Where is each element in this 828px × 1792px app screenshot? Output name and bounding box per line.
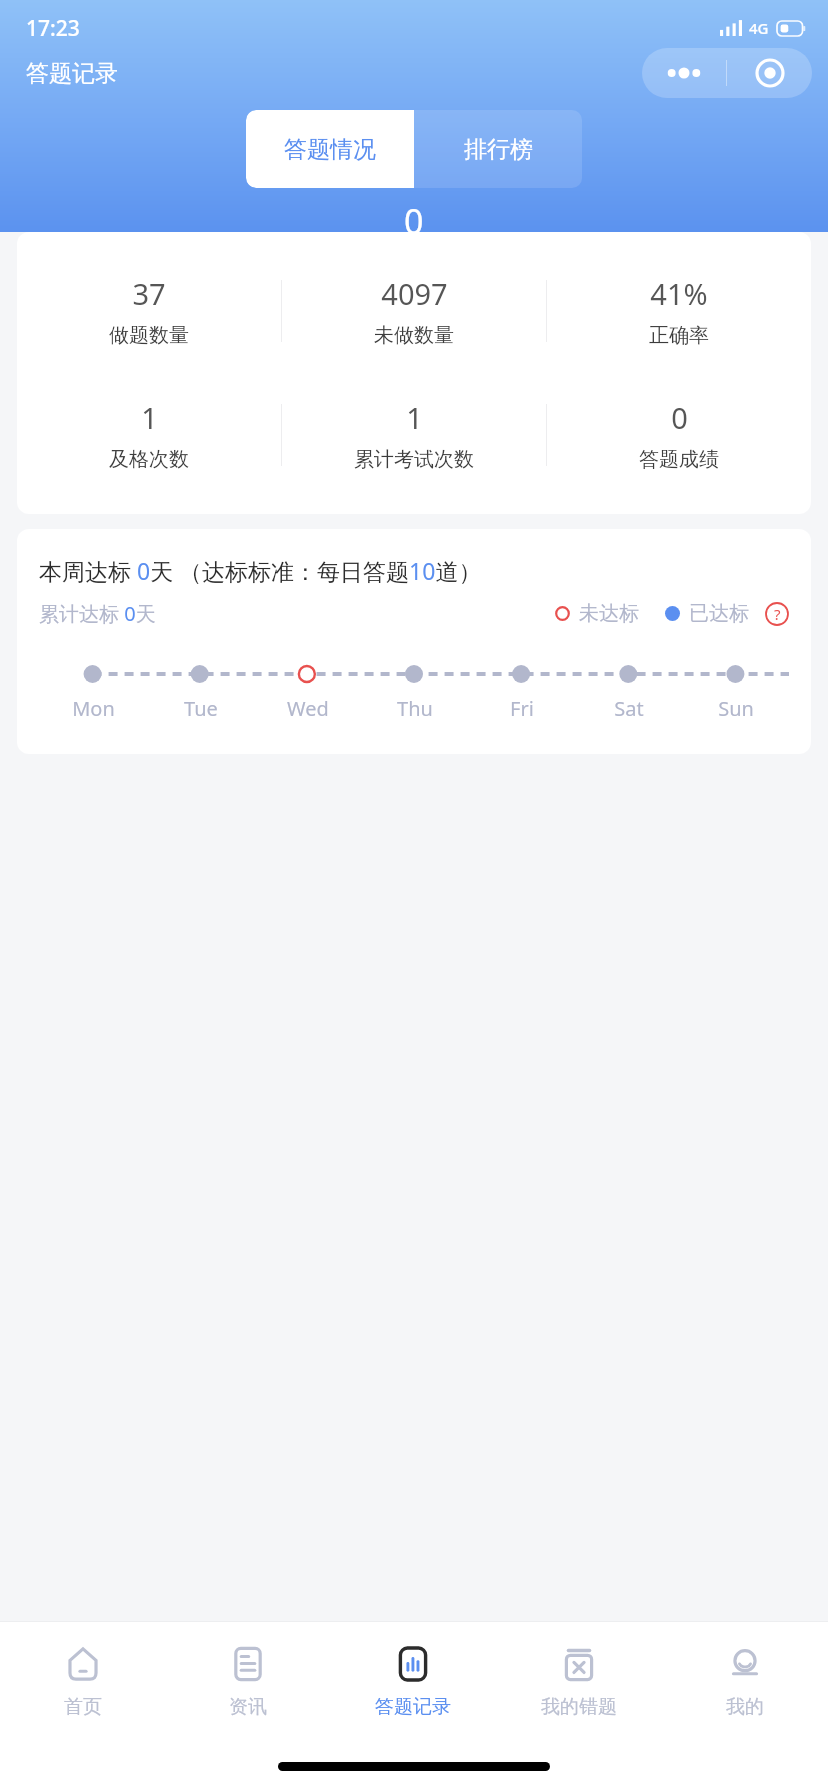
staticText: Wed bbox=[287, 695, 329, 722]
staticText: Fri bbox=[510, 695, 534, 722]
staticText: 累计达标 0天 bbox=[39, 600, 156, 627]
staticText: 1 bbox=[141, 398, 158, 437]
staticText: 及格次数 bbox=[109, 447, 189, 472]
button[interactable]: Help bbox=[765, 602, 789, 626]
staticText: 答题记录 bbox=[375, 1695, 451, 1719]
staticText: 答题情况 bbox=[284, 135, 376, 164]
button[interactable]: 0 bbox=[547, 386, 811, 484]
staticText: 正确率 bbox=[649, 323, 709, 348]
button[interactable]: 1 bbox=[17, 386, 281, 484]
button[interactable]: 37 bbox=[17, 262, 281, 360]
staticText: 1 bbox=[406, 398, 423, 437]
staticText: 37 bbox=[132, 274, 166, 313]
button[interactable]: 我的 bbox=[662, 1622, 828, 1740]
staticText: 未达标 bbox=[579, 601, 639, 626]
staticText: 4097 bbox=[381, 274, 448, 313]
staticText: 我的错题 bbox=[541, 1695, 617, 1719]
staticText: Sat bbox=[614, 695, 644, 722]
button[interactable]: 1 bbox=[282, 386, 546, 484]
button[interactable]: 排行榜 bbox=[414, 110, 582, 188]
button[interactable]: 首页 bbox=[0, 1622, 165, 1740]
staticText: 本周达标 0天 （达标标准：每日答题10道） bbox=[39, 555, 482, 586]
staticText: 已达标 bbox=[689, 601, 749, 626]
button[interactable]: More bbox=[642, 48, 726, 98]
button[interactable]: 37 bbox=[17, 232, 811, 514]
staticText: 41% bbox=[650, 274, 708, 313]
staticText: 我的 bbox=[726, 1695, 764, 1719]
staticText: 累计考试次数 bbox=[354, 447, 474, 472]
staticText: 未做数量 bbox=[374, 323, 454, 348]
button[interactable]: 41% bbox=[547, 262, 811, 360]
staticText: 答题记录 bbox=[26, 59, 118, 88]
staticText: 0 bbox=[671, 398, 688, 437]
staticText: Tue bbox=[184, 695, 218, 722]
staticText: 做题数量 bbox=[109, 323, 189, 348]
button[interactable]: Close bbox=[727, 48, 812, 98]
button[interactable]: 答题情况 bbox=[246, 110, 414, 188]
staticText: 4G bbox=[749, 18, 769, 38]
button[interactable]: 资讯 bbox=[165, 1622, 330, 1740]
staticText: 17:23 bbox=[26, 14, 80, 43]
button[interactable]: 答题记录 bbox=[330, 1622, 496, 1740]
staticText: Thu bbox=[397, 695, 433, 722]
button[interactable]: 我的错题 bbox=[496, 1622, 662, 1740]
button[interactable]: 本周达标 0天 （达标标准：每日答题10道） bbox=[17, 529, 811, 754]
staticText: 答题成绩 bbox=[639, 447, 719, 472]
staticText: 0 bbox=[404, 198, 424, 232]
staticText: 排行榜 bbox=[464, 135, 533, 164]
staticText: ? bbox=[774, 604, 781, 624]
staticText: 资讯 bbox=[229, 1695, 267, 1719]
staticText: 首页 bbox=[64, 1695, 102, 1719]
button[interactable]: 4097 bbox=[282, 262, 546, 360]
staticText: Sun bbox=[718, 695, 754, 722]
staticText: Mon bbox=[72, 695, 115, 722]
